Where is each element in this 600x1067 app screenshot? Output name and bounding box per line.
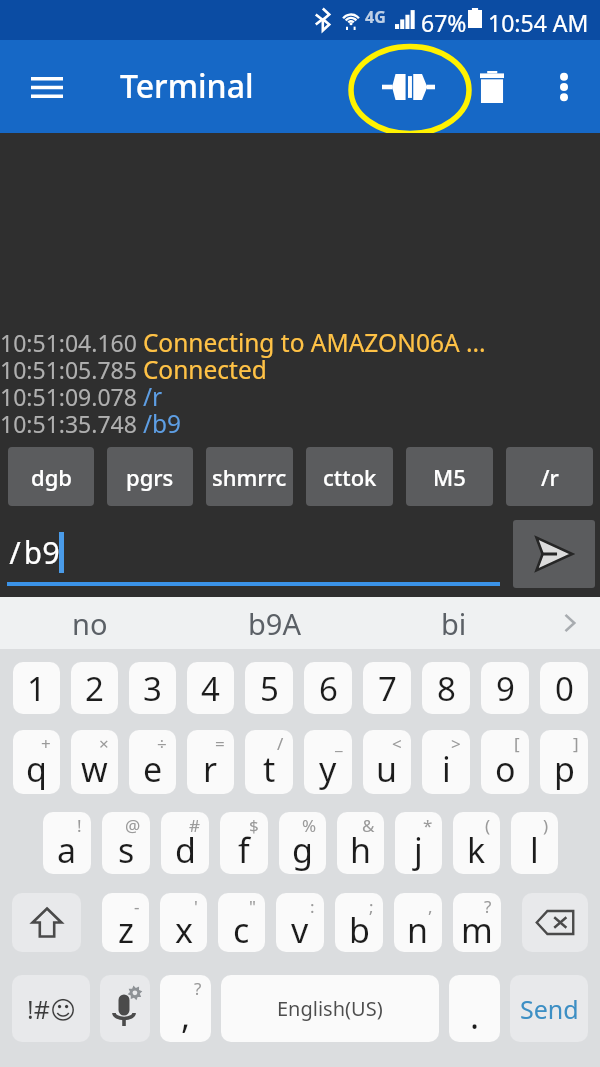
button[interactable]: 8	[422, 662, 470, 714]
staticText: /r	[541, 462, 559, 492]
button[interactable]: Shift	[12, 893, 81, 952]
staticText: bi	[441, 604, 467, 643]
staticText: b	[349, 907, 370, 952]
staticText: _	[335, 732, 343, 755]
button[interactable]: ?	[160, 975, 211, 1042]
staticText: 10:54 AM	[488, 7, 589, 38]
button[interactable]: 7	[363, 662, 411, 714]
button[interactable]: ,	[394, 893, 442, 952]
staticText: h	[350, 827, 372, 873]
staticText: e	[143, 746, 163, 792]
button[interactable]: Clear terminal	[458, 49, 526, 125]
button[interactable]: Voice input	[100, 975, 150, 1042]
button[interactable]: 5	[245, 662, 293, 714]
staticText: 2	[85, 666, 104, 711]
staticText: j	[414, 827, 423, 873]
staticText: %	[302, 814, 317, 837]
button[interactable]: cttok	[306, 447, 393, 506]
staticText: shmrrc	[212, 462, 287, 492]
staticText: ?	[484, 895, 492, 918]
staticText: /b9	[6, 532, 60, 573]
staticText: n	[407, 907, 429, 952]
staticText: 10:51:05.785 Connected	[0, 353, 267, 386]
staticText: ]	[573, 732, 579, 755]
staticText: q	[26, 746, 47, 792]
button[interactable]: dgb	[8, 447, 94, 506]
button[interactable]: *	[395, 812, 442, 874]
button[interactable]: _	[304, 730, 352, 794]
staticText: 5	[260, 666, 279, 711]
button[interactable]: Symbols and emoji	[12, 975, 90, 1042]
button[interactable]: Connect device	[360, 49, 456, 125]
button[interactable]: )	[511, 812, 558, 874]
button[interactable]: ÷	[129, 730, 176, 794]
button[interactable]: More options	[532, 49, 596, 125]
button[interactable]: #	[161, 812, 209, 874]
staticText: cttok	[323, 462, 377, 492]
staticText: ÷	[157, 732, 167, 755]
staticText: '	[194, 895, 198, 918]
button[interactable]: English(US)	[221, 975, 439, 1042]
button[interactable]: !	[43, 812, 91, 874]
button[interactable]: ]	[540, 730, 588, 794]
button[interactable]: $	[220, 812, 268, 874]
staticText: -	[134, 895, 140, 918]
button[interactable]: ?	[453, 893, 501, 952]
button[interactable]: shmrrc	[206, 447, 293, 506]
staticText: .	[470, 993, 480, 1039]
button[interactable]: 4	[187, 662, 234, 714]
button[interactable]: [	[481, 730, 529, 794]
button[interactable]: (	[453, 812, 500, 874]
button[interactable]: 0	[540, 662, 588, 714]
staticText: y	[319, 746, 337, 792]
button[interactable]: %	[279, 812, 326, 874]
button[interactable]: Navigation menu	[7, 51, 87, 123]
button[interactable]: ×	[71, 730, 118, 794]
button[interactable]: "	[218, 893, 265, 952]
staticText: 67%	[421, 7, 467, 38]
staticText: $	[249, 814, 259, 837]
button[interactable]: 3	[129, 662, 176, 714]
staticText: 3	[143, 666, 162, 711]
button[interactable]: More suggestions	[538, 597, 600, 649]
staticText: s	[118, 827, 135, 873]
staticText: g	[292, 827, 313, 873]
staticText: d	[175, 827, 196, 873]
staticText: u	[376, 746, 398, 792]
button[interactable]: ;	[335, 893, 383, 952]
button[interactable]: .	[449, 975, 500, 1042]
staticText: (	[485, 814, 491, 837]
button[interactable]: -	[102, 893, 149, 952]
button[interactable]: :	[276, 893, 324, 952]
button[interactable]: <	[363, 730, 411, 794]
staticText: 7	[378, 666, 397, 711]
button[interactable]: /	[245, 730, 293, 794]
button[interactable]: Backspace	[522, 893, 588, 952]
staticText: &	[362, 814, 375, 837]
button[interactable]: >	[422, 730, 470, 794]
button[interactable]: Send	[510, 975, 588, 1042]
button[interactable]: pgrs	[107, 447, 193, 506]
button[interactable]: &	[337, 812, 384, 874]
button[interactable]: Send	[513, 520, 595, 588]
staticText: b9A	[248, 604, 301, 643]
button[interactable]: =	[187, 730, 234, 794]
button[interactable]: 6	[304, 662, 352, 714]
staticText: [	[514, 732, 520, 755]
staticText: w	[81, 746, 108, 792]
button[interactable]: +	[13, 730, 60, 794]
staticText: <	[392, 732, 402, 755]
button[interactable]: '	[160, 893, 207, 952]
button[interactable]: bi	[370, 597, 538, 649]
staticText: +	[41, 732, 51, 755]
button[interactable]: 9	[481, 662, 529, 714]
button[interactable]: /r	[506, 447, 593, 506]
staticText: !#☺	[27, 992, 76, 1026]
button[interactable]: @	[102, 812, 150, 874]
button[interactable]: b9A	[179, 597, 370, 649]
staticText: m	[461, 907, 493, 952]
button[interactable]: 1	[13, 662, 60, 714]
button[interactable]: M5	[406, 447, 493, 506]
button[interactable]: no	[0, 597, 179, 649]
button[interactable]: 2	[71, 662, 118, 714]
